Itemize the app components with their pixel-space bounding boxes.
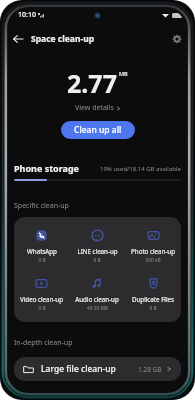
staticText: View details: [75, 103, 114, 113]
staticText: 19% used/18.14 GB available: [100, 165, 181, 173]
staticText: 500 kB: [145, 257, 161, 264]
staticText: Clean up all: [74, 124, 122, 136]
staticText: 0 B: [38, 257, 46, 264]
staticText: Video clean-up: [20, 295, 63, 303]
button[interactable]: WhatsApp: [14, 229, 69, 264]
staticText: Photo clean-up: [131, 247, 175, 255]
staticText: 49.39 MB: [87, 305, 108, 312]
staticText: Large file clean-up: [41, 363, 116, 375]
staticText: LINE clean-up: [77, 247, 118, 255]
button[interactable]: Phone storage: [0, 162, 195, 181]
button[interactable]: Duplicate Files: [125, 277, 181, 312]
staticText: 2.77: [67, 66, 117, 100]
button[interactable]: LINE clean-up: [69, 229, 125, 264]
staticText: Specific clean-up: [14, 201, 69, 211]
staticText: WhatsApp: [27, 247, 57, 255]
button[interactable]: Large file clean-up: [14, 357, 181, 381]
staticText: 0 B: [38, 305, 46, 312]
staticText: 1.28 GB: [138, 365, 162, 374]
button[interactable]: Clean up all: [61, 121, 135, 139]
staticText: Space clean-up: [31, 33, 95, 45]
staticText: 10:10: [18, 10, 36, 20]
staticText: Duplicate Files: [132, 295, 174, 303]
staticText: 0 B: [93, 257, 101, 264]
button[interactable]: View details: [71, 102, 125, 114]
button[interactable]: Audio clean-up: [69, 277, 125, 312]
staticText: MB: [119, 70, 128, 77]
button[interactable]: Settings: [168, 30, 186, 48]
staticText: In-depth clean-up: [14, 338, 73, 348]
staticText: Phone storage: [14, 162, 79, 174]
staticText: Audio clean-up: [75, 295, 119, 303]
button[interactable]: Back: [9, 30, 27, 48]
button[interactable]: Video clean-up: [14, 277, 69, 312]
button[interactable]: Photo clean-up: [125, 229, 181, 264]
staticText: 0 B: [149, 305, 157, 312]
